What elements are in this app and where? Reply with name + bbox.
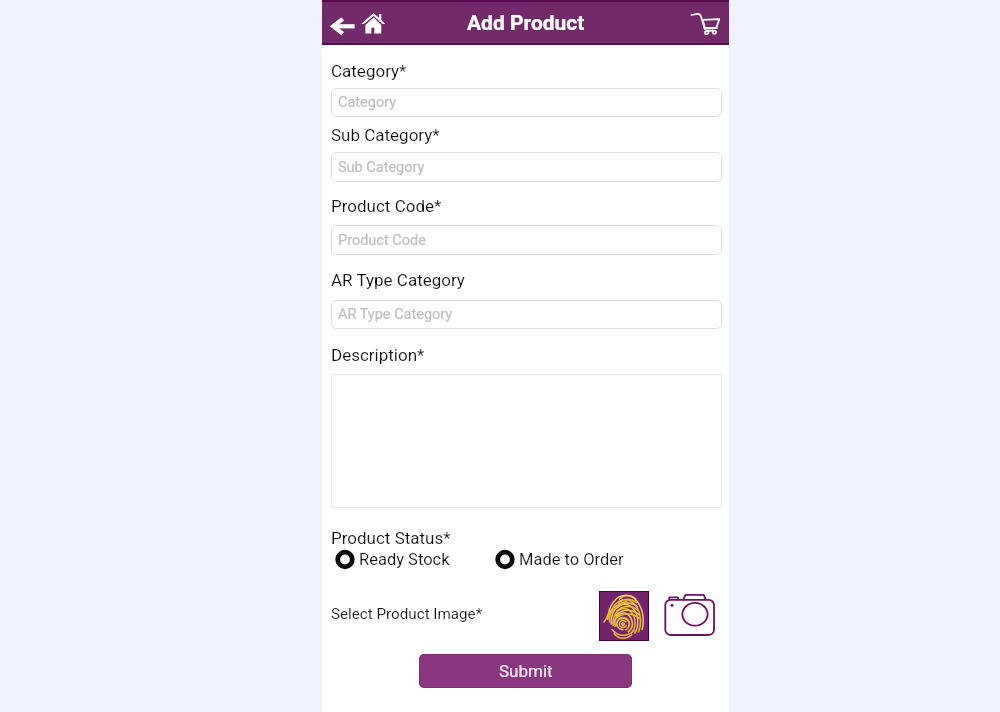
staticText: Select Product Image* <box>331 605 483 623</box>
staticText: AR Type Category <box>331 270 465 290</box>
staticText: Sub Category* <box>331 125 440 145</box>
button[interactable]: Home <box>359 10 387 36</box>
staticText: Ready Stock <box>359 550 450 569</box>
button[interactable]: Submit <box>419 654 632 688</box>
button[interactable]: Ready Stock <box>335 550 450 569</box>
button[interactable]: Cart <box>690 11 722 37</box>
button[interactable]: Sub Category <box>331 152 722 182</box>
staticText: Sub Category <box>338 159 425 176</box>
staticText: Made to Order <box>519 550 624 569</box>
staticText: Add Product <box>467 11 585 36</box>
staticText: Product Status* <box>331 528 451 548</box>
button[interactable]: Back <box>329 14 357 40</box>
button[interactable]: AR Type Category <box>331 300 722 329</box>
button[interactable]: Selected product image <box>599 591 649 641</box>
button[interactable]: Category <box>331 88 722 117</box>
button[interactable]: Product Code <box>331 225 722 255</box>
staticText: Product Code* <box>331 196 442 216</box>
staticText: AR Type Category <box>338 306 453 323</box>
staticText: Category <box>338 94 397 111</box>
staticText: Description* <box>331 345 425 365</box>
button[interactable]: Made to Order <box>495 550 624 569</box>
staticText: Category* <box>331 61 407 81</box>
button[interactable]: Take photo <box>663 592 717 638</box>
staticText: Submit <box>499 661 553 681</box>
staticText: Product Code <box>338 232 426 249</box>
